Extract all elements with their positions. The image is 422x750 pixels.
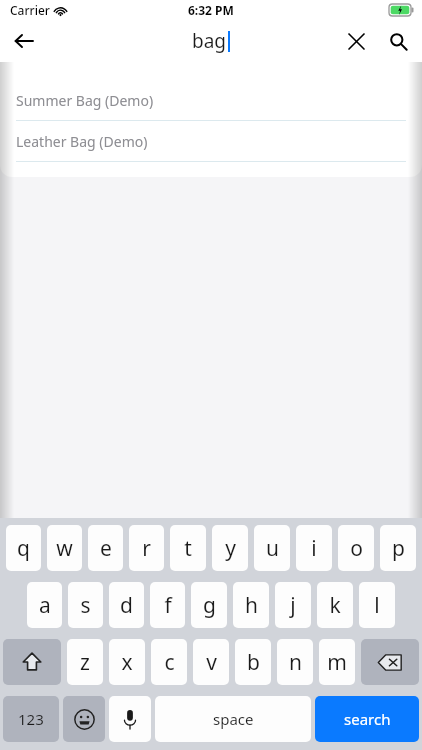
button[interactable]: Back xyxy=(8,25,40,57)
staticText: 123 xyxy=(18,709,44,729)
staticText: f xyxy=(164,591,172,620)
button[interactable]: z xyxy=(67,639,103,685)
button[interactable]: m xyxy=(319,639,355,685)
button[interactable]: u xyxy=(254,525,290,571)
staticText: z xyxy=(80,648,90,677)
button[interactable]: n xyxy=(277,639,313,685)
staticText: u xyxy=(266,534,279,563)
button[interactable]: x xyxy=(109,639,145,685)
staticText: w xyxy=(56,534,73,563)
staticText: space xyxy=(213,709,254,729)
button[interactable]: d xyxy=(109,582,144,628)
button[interactable]: o xyxy=(338,525,374,571)
staticText: b xyxy=(247,648,260,677)
button[interactable]: Search xyxy=(382,25,414,57)
staticText: i xyxy=(311,534,317,563)
button[interactable]: Numbers xyxy=(3,696,59,742)
button[interactable]: f xyxy=(150,582,185,628)
staticText: g xyxy=(203,591,216,620)
button[interactable]: h xyxy=(233,582,269,628)
button[interactable]: w xyxy=(47,525,82,571)
staticText: 6:32 PM xyxy=(188,2,234,18)
button[interactable]: search xyxy=(315,696,419,742)
button[interactable]: Dictation xyxy=(109,696,151,742)
staticText: j xyxy=(290,591,296,620)
staticText: search xyxy=(344,709,391,729)
staticText: x xyxy=(121,648,133,677)
staticText: n xyxy=(289,648,302,677)
staticText: t xyxy=(184,534,192,563)
staticText: c xyxy=(164,648,175,677)
staticText: a xyxy=(39,591,51,620)
button[interactable]: k xyxy=(317,582,353,628)
button[interactable]: c xyxy=(151,639,187,685)
button[interactable]: r xyxy=(129,525,164,571)
button[interactable]: b xyxy=(235,639,271,685)
button[interactable]: j xyxy=(275,582,311,628)
button[interactable]: Leather Bag (Demo) xyxy=(0,121,422,162)
staticText: h xyxy=(245,591,258,620)
button[interactable]: l xyxy=(359,582,395,628)
button[interactable]: Emoji xyxy=(63,696,105,742)
staticText: o xyxy=(350,534,363,563)
button[interactable]: Summer Bag (Demo) xyxy=(0,80,422,121)
staticText: bag xyxy=(192,28,227,54)
staticText: s xyxy=(80,591,91,620)
staticText: r xyxy=(142,534,151,563)
staticText: m xyxy=(327,648,347,677)
button[interactable]: g xyxy=(191,582,227,628)
button[interactable]: i xyxy=(296,525,332,571)
button[interactable]: s xyxy=(68,582,103,628)
button[interactable]: space xyxy=(155,696,311,742)
staticText: y xyxy=(225,534,236,563)
button[interactable]: q xyxy=(6,525,41,571)
button[interactable]: p xyxy=(380,525,416,571)
staticText: l xyxy=(374,591,380,620)
staticText: Summer Bag (Demo) xyxy=(16,91,154,110)
button[interactable]: Clear xyxy=(340,25,372,57)
staticText: q xyxy=(17,534,30,563)
staticText: d xyxy=(120,591,133,620)
button[interactable]: v xyxy=(193,639,229,685)
button[interactable]: e xyxy=(88,525,123,571)
button[interactable]: y xyxy=(212,525,248,571)
button[interactable]: Shift xyxy=(3,639,61,685)
staticText: k xyxy=(329,591,341,620)
button[interactable]: Backspace xyxy=(361,639,419,685)
button[interactable]: a xyxy=(27,582,62,628)
staticText: e xyxy=(100,534,112,563)
staticText: Leather Bag (Demo) xyxy=(16,132,148,151)
staticText: p xyxy=(392,534,405,563)
button[interactable]: t xyxy=(170,525,206,571)
staticText: v xyxy=(206,648,217,677)
staticText: Carrier xyxy=(10,2,50,18)
